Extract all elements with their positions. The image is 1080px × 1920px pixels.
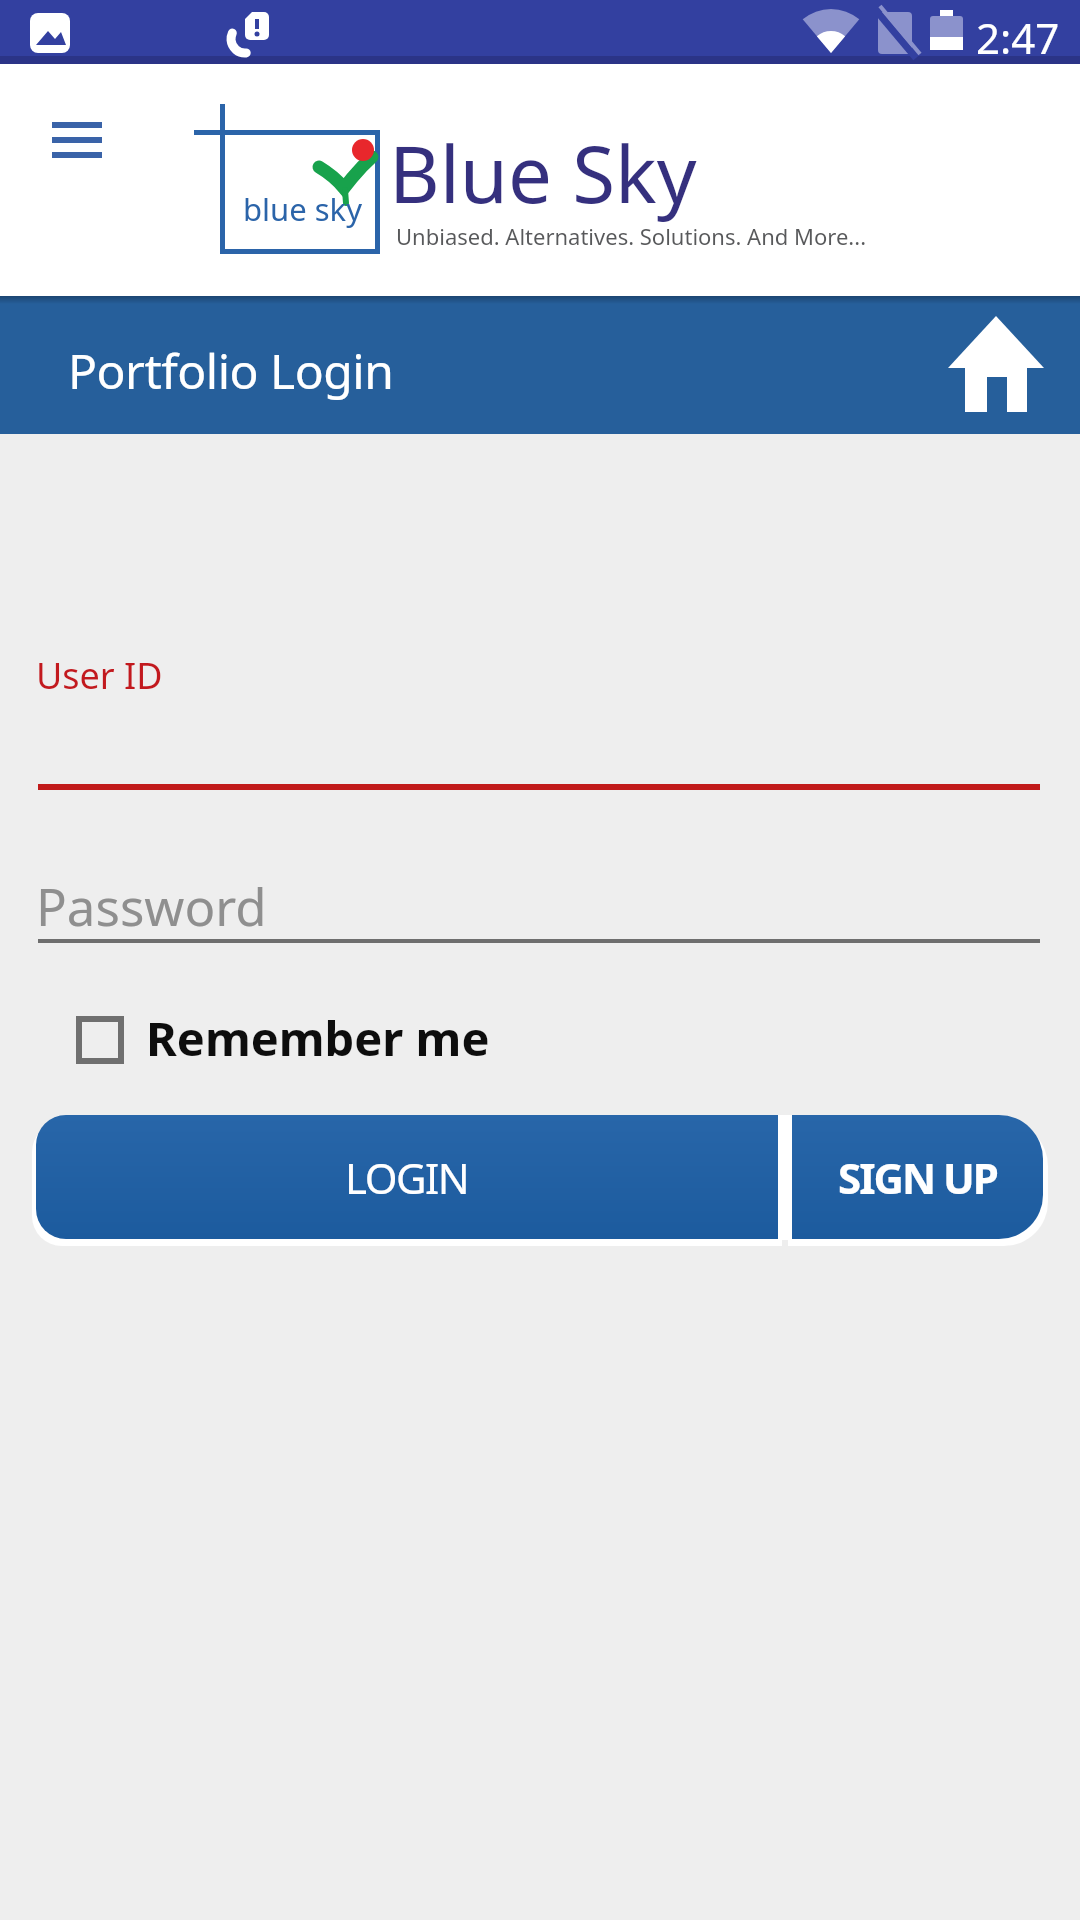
staticText: blue sky	[243, 188, 362, 230]
button[interactable]: Remember me	[60, 1000, 480, 1080]
staticText: Password	[36, 871, 267, 940]
staticText: Blue Sky	[389, 120, 697, 226]
button[interactable]: SIGN UP	[792, 1115, 1043, 1239]
staticText: SIGN UP	[838, 1149, 997, 1206]
staticText: Remember me	[146, 1006, 490, 1070]
staticText: Unbiased. Alternatives. Solutions. And M…	[396, 221, 867, 251]
staticText: Portfolio Login	[68, 338, 394, 403]
staticText: LOGIN	[345, 1149, 469, 1206]
button[interactable]	[938, 306, 1054, 422]
button[interactable]	[40, 110, 114, 172]
staticText: User ID	[36, 651, 163, 700]
staticText: 2:47	[976, 9, 1060, 66]
button[interactable]: LOGIN	[36, 1115, 778, 1239]
